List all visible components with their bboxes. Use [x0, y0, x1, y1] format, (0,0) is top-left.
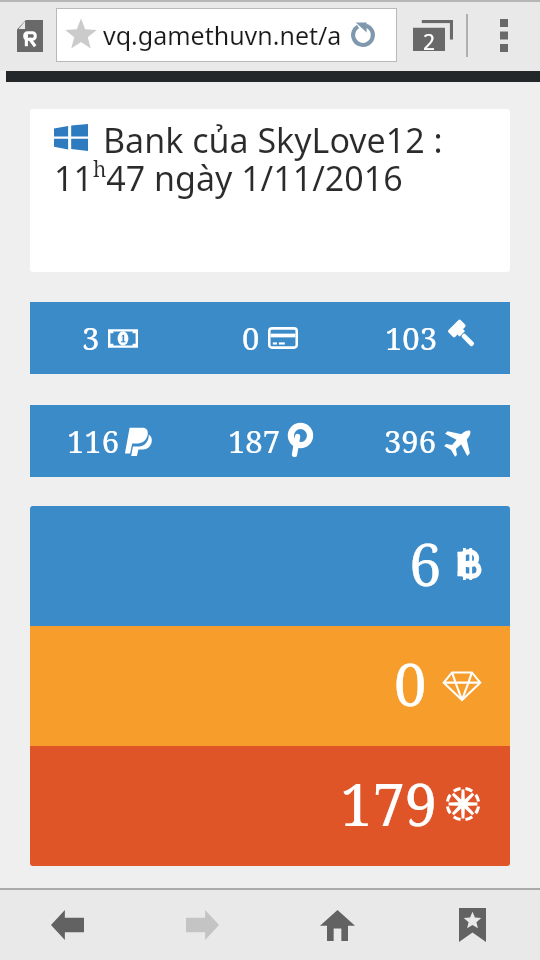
staticText: 2: [423, 28, 436, 51]
button[interactable]: 179: [30, 746, 510, 866]
button[interactable]: Back: [0, 890, 135, 960]
button[interactable]: 6: [30, 506, 510, 626]
staticText: 396: [384, 420, 436, 462]
staticText: 0: [394, 644, 427, 723]
button[interactable]: Home: [270, 890, 405, 960]
button[interactable]: More options: [475, 0, 533, 71]
button[interactable]: 116: [30, 405, 510, 477]
button[interactable]: Tabs: [404, 0, 462, 71]
button[interactable]: vq.gamethuvn.net/a: [57, 9, 396, 61]
button[interactable]: 0: [30, 626, 510, 746]
button[interactable]: Reader mode: [10, 0, 50, 71]
staticText: 6: [409, 524, 442, 603]
staticText: 0: [242, 317, 260, 359]
staticText: 116: [67, 420, 119, 462]
button[interactable]: 3: [30, 302, 510, 374]
staticText: 3: [82, 317, 100, 359]
staticText: vq.gamethuvn.net/a: [103, 18, 342, 52]
staticText: 103: [385, 317, 437, 359]
staticText: 187: [228, 420, 280, 462]
button[interactable]: Bookmarks: [405, 890, 540, 960]
staticText: 11h47 ngày 1/11/2016: [54, 155, 403, 201]
staticText: Bank của SkyLove12 :: [103, 117, 443, 163]
button[interactable]: Forward: [135, 890, 270, 960]
staticText: 179: [340, 764, 438, 843]
